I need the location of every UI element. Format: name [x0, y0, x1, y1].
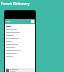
button[interactable]: Search [5, 19, 35, 24]
staticText: French Dictionary [1, 1, 30, 6]
button[interactable] [5, 68, 35, 72]
button[interactable]: Search [31, 20, 34, 23]
